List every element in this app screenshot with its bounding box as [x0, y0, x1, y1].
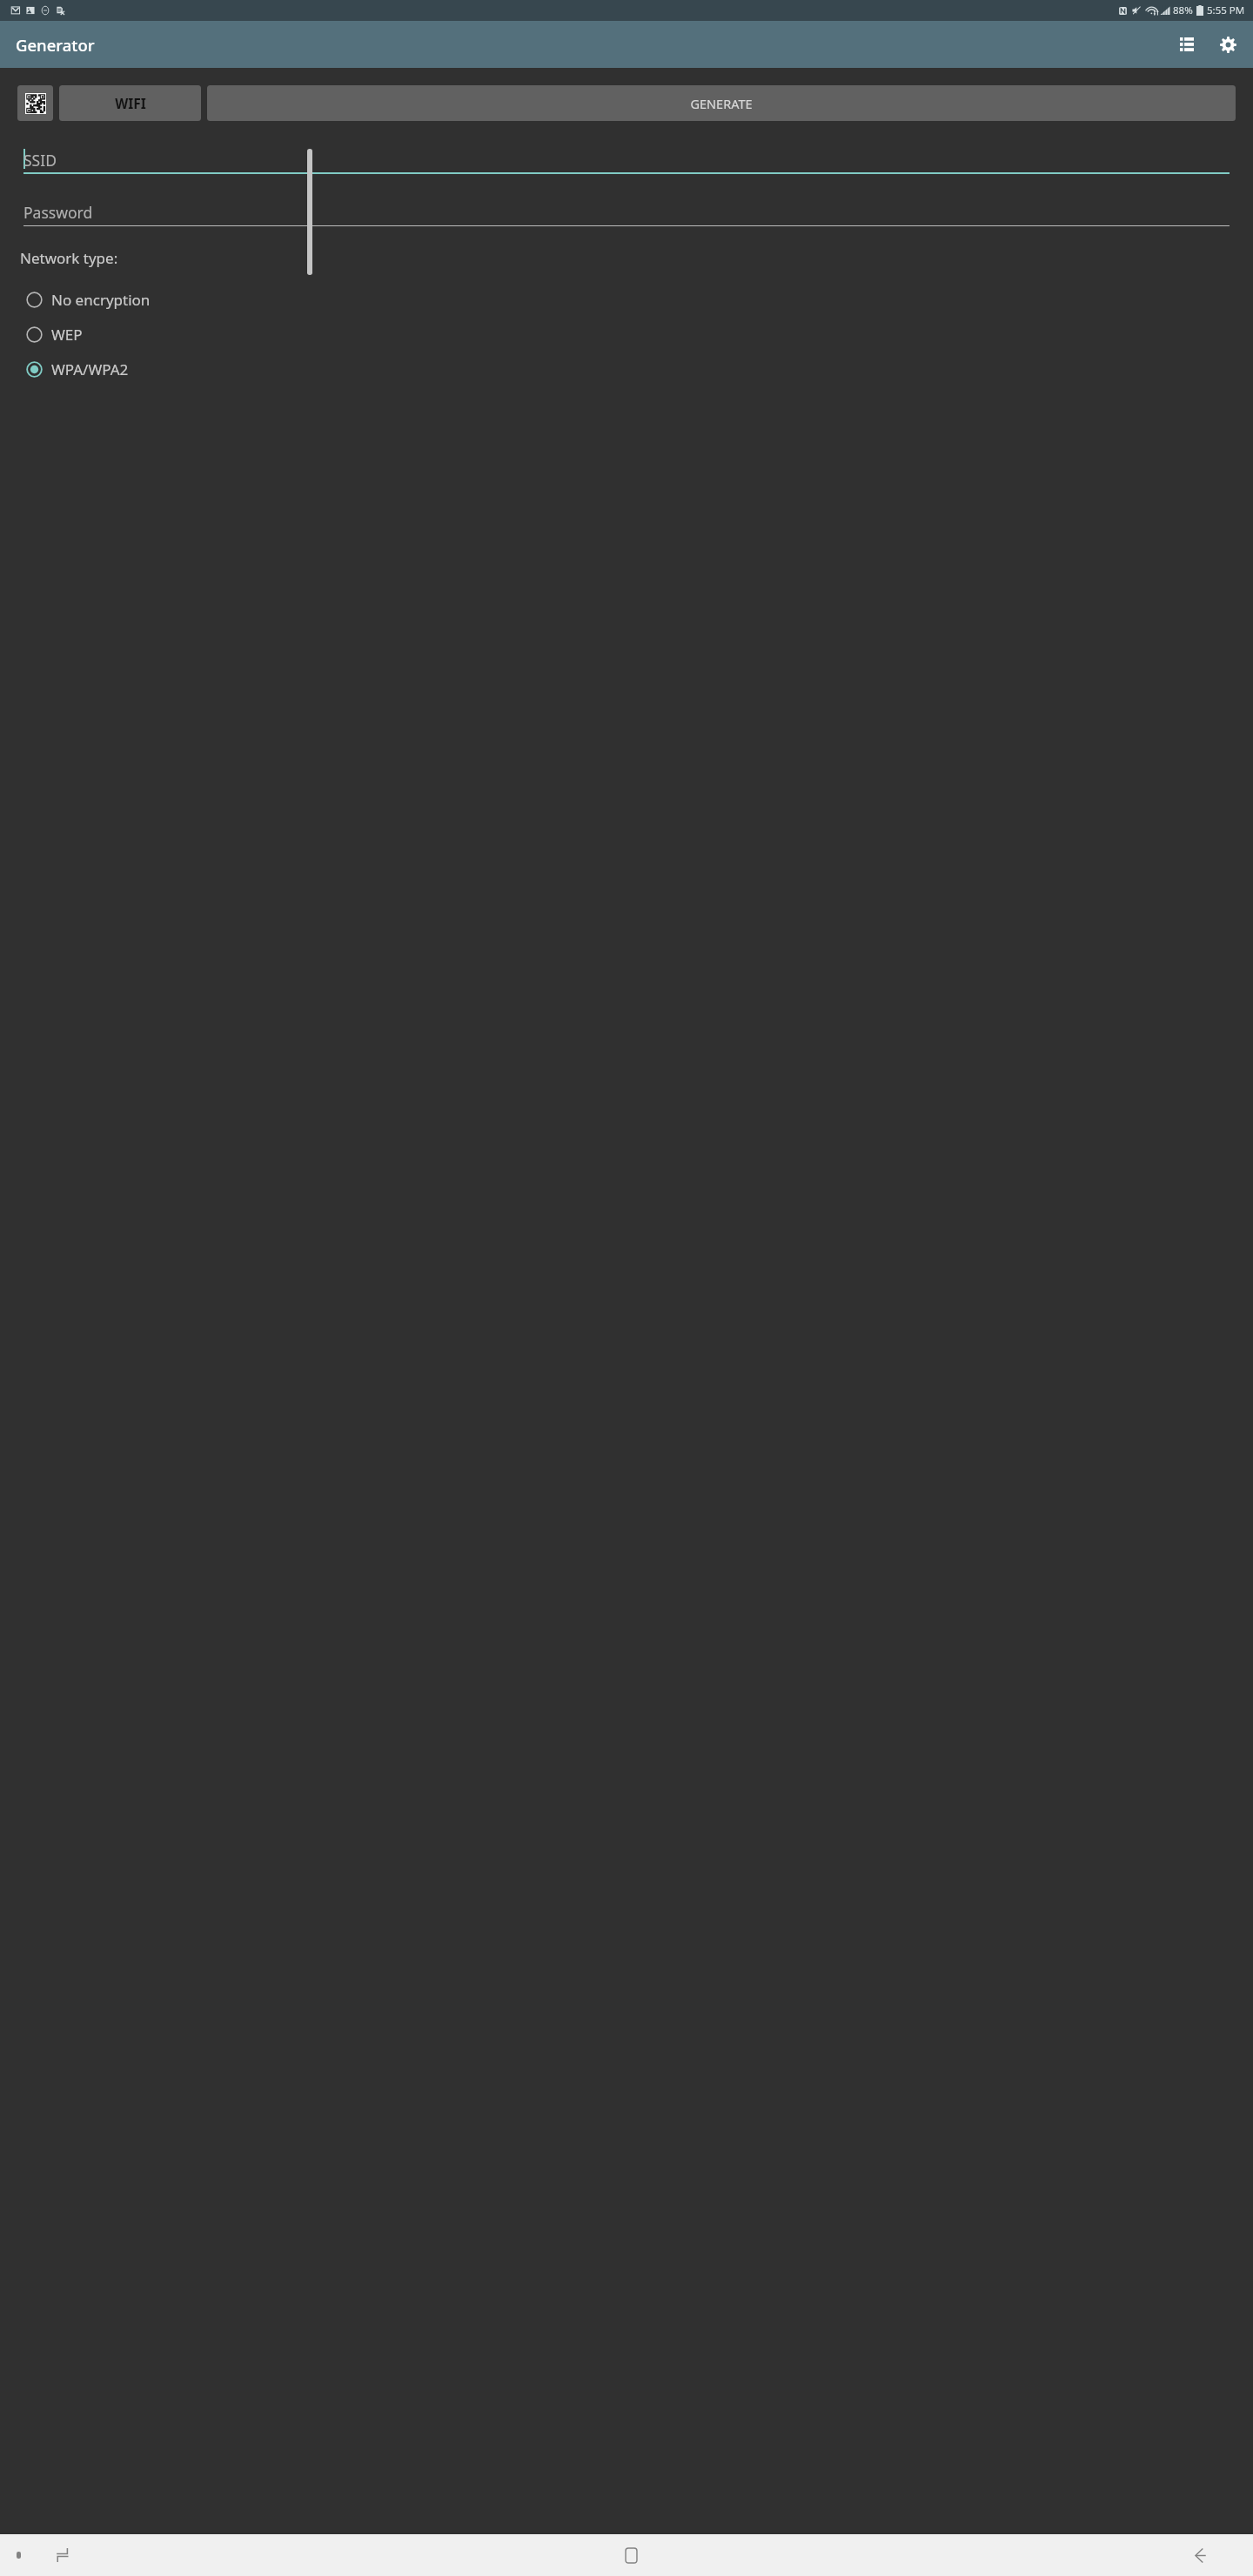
- button[interactable]: Back: [1178, 2534, 1220, 2576]
- staticText: 5:55 PM: [1207, 3, 1245, 17]
- button[interactable]: WIFI: [59, 85, 201, 121]
- staticText: GENERATE: [690, 95, 753, 112]
- button[interactable]: Settings: [1212, 29, 1243, 60]
- staticText: WEP: [51, 325, 83, 345]
- button[interactable]: WPA/WPA2: [0, 352, 1253, 386]
- staticText: WIFI: [115, 94, 146, 112]
- staticText: Network type:: [20, 248, 118, 268]
- staticText: No encryption: [51, 290, 151, 310]
- button[interactable]: SSID: [23, 146, 1230, 174]
- staticText: WPA/WPA2: [51, 359, 129, 379]
- button[interactable]: GENERATE: [207, 85, 1236, 121]
- button[interactable]: Password: [23, 198, 1230, 226]
- button[interactable]: WEP: [0, 317, 1253, 352]
- button[interactable]: QR code type: [17, 85, 53, 121]
- button[interactable]: Home: [610, 2534, 652, 2576]
- button[interactable]: Recent apps: [42, 2534, 84, 2576]
- staticText: Generator: [16, 34, 95, 56]
- staticText: 88%: [1173, 3, 1193, 17]
- staticText: SSID: [23, 150, 57, 171]
- staticText: Password: [23, 202, 93, 223]
- button[interactable]: No encryption: [0, 282, 1253, 317]
- button[interactable]: History list: [1171, 29, 1203, 60]
